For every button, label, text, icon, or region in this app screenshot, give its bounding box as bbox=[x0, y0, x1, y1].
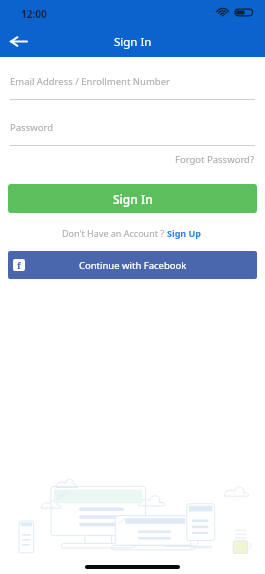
staticText: 12:00 bbox=[21, 7, 47, 21]
button[interactable]: Email Address / Enrollment Number bbox=[10, 75, 255, 100]
staticText: Sign In bbox=[114, 34, 152, 50]
staticText: Continue with Facebook bbox=[79, 259, 187, 272]
button[interactable]: Back bbox=[0, 26, 36, 57]
staticText: Forgot Password? bbox=[175, 153, 255, 166]
button[interactable]: Sign In bbox=[8, 184, 257, 213]
staticText: f bbox=[17, 259, 21, 271]
staticText: Password bbox=[10, 121, 53, 134]
staticText: Sign In bbox=[113, 191, 153, 207]
button[interactable]: Password bbox=[10, 121, 255, 146]
staticText: Sign Up bbox=[167, 227, 202, 239]
button[interactable]: Sign Up bbox=[165, 225, 204, 241]
staticText: Don't Have an Account ? bbox=[62, 227, 165, 239]
button[interactable]: Forgot Password? bbox=[173, 149, 257, 170]
staticText: Email Address / Enrollment Number bbox=[10, 75, 170, 88]
button[interactable]: Continue with Facebook bbox=[8, 251, 257, 279]
